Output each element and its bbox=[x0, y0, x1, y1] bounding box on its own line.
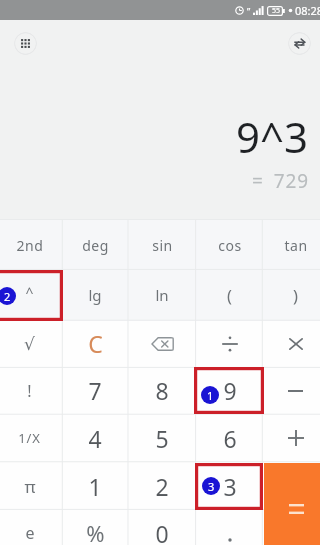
button[interactable] bbox=[262, 509, 320, 545]
other: Multiply bbox=[289, 338, 303, 350]
staticText: 7 bbox=[88, 375, 102, 406]
staticText: ln bbox=[155, 285, 169, 305]
staticText: 2 bbox=[155, 471, 169, 502]
button[interactable]: lg bbox=[62, 269, 128, 320]
button[interactable]: Convert units bbox=[288, 32, 311, 55]
staticText: 2 bbox=[4, 289, 11, 304]
button[interactable]: 2 bbox=[128, 462, 196, 510]
staticText: tan bbox=[284, 236, 308, 255]
staticText: 1 bbox=[207, 388, 214, 403]
staticText: deg bbox=[82, 236, 109, 255]
button[interactable]: 2nd bbox=[0, 220, 63, 270]
staticText: 55 bbox=[272, 6, 281, 16]
staticText: e bbox=[25, 522, 35, 544]
staticText: 9 bbox=[223, 375, 237, 406]
staticText: √ bbox=[24, 334, 35, 354]
button[interactable]: % bbox=[62, 509, 128, 545]
staticText: 0 bbox=[155, 518, 169, 545]
staticText: ( bbox=[227, 284, 232, 306]
button[interactable]: 5 bbox=[128, 414, 196, 462]
other: Minus bbox=[288, 389, 303, 393]
button[interactable]: Minus bbox=[262, 367, 320, 414]
button[interactable]: Divide bbox=[196, 320, 263, 367]
button[interactable]: 1/X bbox=[0, 414, 63, 462]
button[interactable]: 3 bbox=[196, 462, 263, 510]
staticText: 3 bbox=[208, 479, 215, 494]
staticText: π bbox=[24, 475, 36, 498]
staticText: 9^3 bbox=[236, 108, 309, 165]
staticText: cos bbox=[218, 236, 242, 255]
other: Divide bbox=[222, 336, 238, 352]
staticText: 2nd bbox=[16, 236, 44, 255]
button[interactable]: Keypad bbox=[14, 32, 37, 55]
button[interactable]: Equals bbox=[264, 463, 320, 545]
button[interactable]: deg bbox=[62, 220, 128, 270]
button[interactable]: Backspace bbox=[128, 320, 196, 367]
other: Plus bbox=[288, 430, 304, 446]
staticText: ” bbox=[247, 5, 251, 17]
button[interactable]: Decimal point bbox=[196, 509, 263, 545]
staticText: 8 bbox=[155, 375, 169, 406]
other: Decimal point bbox=[227, 537, 233, 543]
button[interactable]: Plus bbox=[262, 414, 320, 462]
staticText: 1/X bbox=[18, 429, 41, 447]
staticText: 1 bbox=[88, 471, 102, 502]
button[interactable]: 6 bbox=[196, 414, 263, 462]
button[interactable] bbox=[262, 462, 320, 510]
button[interactable]: ) bbox=[262, 269, 320, 320]
staticText: 08:28 bbox=[295, 3, 320, 18]
staticText: ^ bbox=[25, 283, 34, 302]
staticText: sin bbox=[152, 236, 173, 255]
staticText: ! bbox=[27, 380, 32, 402]
staticText: lg bbox=[88, 285, 102, 305]
button[interactable]: 7 bbox=[62, 367, 128, 414]
button[interactable]: 0 bbox=[128, 509, 196, 545]
button[interactable]: C bbox=[62, 320, 128, 367]
staticText: 6 bbox=[223, 423, 237, 454]
button[interactable]: ln bbox=[128, 269, 196, 320]
button[interactable]: 8 bbox=[128, 367, 196, 414]
staticText: C bbox=[88, 328, 103, 359]
button[interactable]: 9 bbox=[196, 367, 263, 414]
staticText: % bbox=[86, 518, 105, 545]
button[interactable]: sin bbox=[128, 220, 196, 270]
button[interactable]: Multiply bbox=[262, 320, 320, 367]
staticText: 4 bbox=[88, 423, 102, 454]
button[interactable]: tan bbox=[262, 220, 320, 270]
button[interactable]: ^ bbox=[0, 269, 63, 320]
button[interactable]: ( bbox=[196, 269, 263, 320]
button[interactable]: ! bbox=[0, 367, 63, 414]
button[interactable]: 4 bbox=[62, 414, 128, 462]
button[interactable]: √ bbox=[0, 320, 63, 367]
button[interactable]: π bbox=[0, 462, 63, 510]
staticText: 3 bbox=[223, 471, 237, 502]
button[interactable]: cos bbox=[196, 220, 263, 270]
staticText: = 729 bbox=[252, 168, 309, 194]
staticText: 5 bbox=[155, 423, 169, 454]
other: Backspace bbox=[151, 337, 174, 351]
button[interactable]: 1 bbox=[62, 462, 128, 510]
staticText: ) bbox=[293, 284, 298, 306]
button[interactable]: e bbox=[0, 509, 63, 545]
